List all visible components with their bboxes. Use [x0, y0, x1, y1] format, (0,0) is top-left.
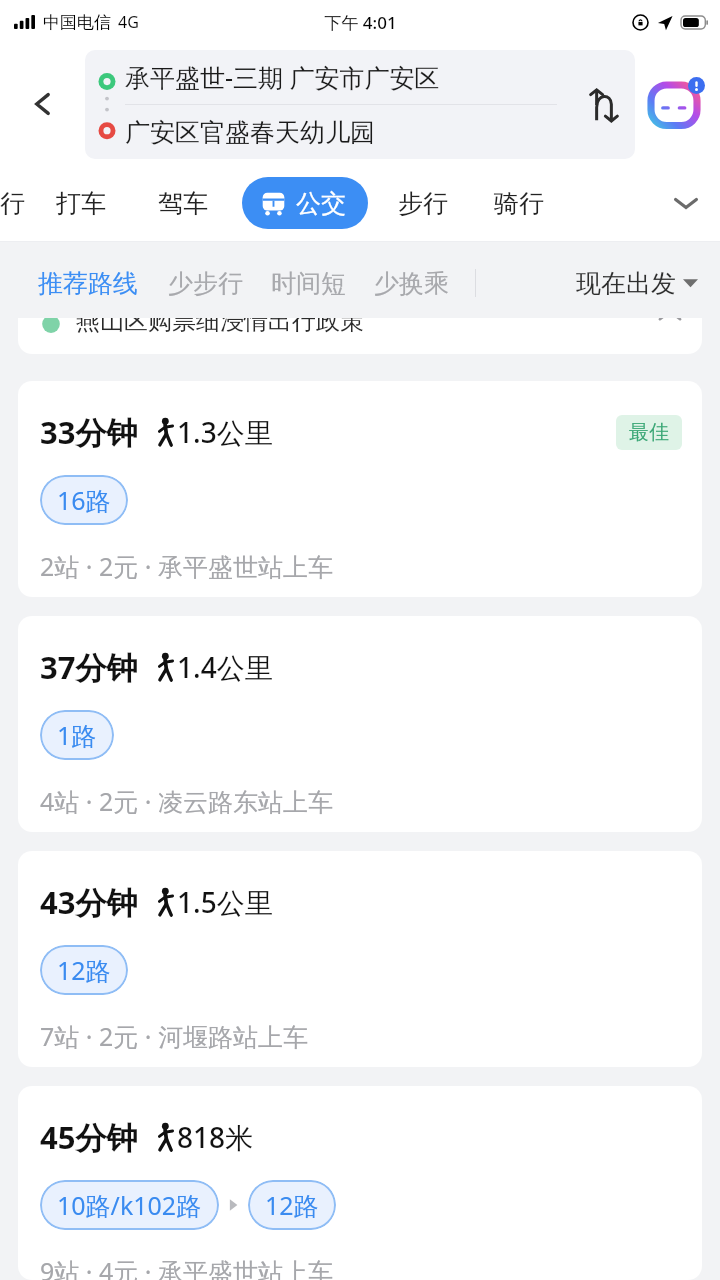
staticText: 12路	[57, 953, 111, 987]
staticText: 45分钟	[40, 1116, 138, 1158]
button[interactable]: 43分钟	[18, 851, 702, 1067]
staticText: 骑行	[494, 188, 544, 219]
staticText: 37分钟	[40, 646, 138, 688]
button[interactable]: 10路/k102路	[40, 1180, 219, 1230]
button[interactable]: 公交	[242, 177, 368, 229]
staticText: 16路	[57, 483, 111, 517]
button[interactable]: 承平盛世-三期 广安市广安区	[85, 50, 635, 159]
button[interactable]: Swap origin and destination	[573, 50, 635, 159]
staticText: 1.3公里	[177, 413, 273, 451]
button[interactable]: 燕山区购票细浸情出行政策	[18, 318, 702, 354]
staticText: 少步行	[168, 268, 243, 299]
staticText: 9站 · 4元 · 承平盛世站上车	[40, 1254, 334, 1280]
staticText: 33分钟	[40, 411, 138, 453]
staticText: 公交	[296, 188, 346, 219]
staticText: 下午 4:01	[324, 11, 397, 34]
staticText: 43分钟	[40, 881, 138, 923]
button[interactable]: 12路	[248, 1180, 336, 1230]
staticText: 12路	[265, 1188, 319, 1222]
button[interactable]: 16路	[40, 475, 128, 525]
staticText: 最佳	[629, 420, 669, 445]
staticText: 驾车	[158, 188, 208, 219]
staticText: 广安区官盛春天幼儿园	[125, 117, 375, 148]
button[interactable]: 45分钟	[18, 1086, 702, 1280]
staticText: 7站 · 2元 · 河堰路站上车	[40, 1019, 309, 1053]
button[interactable]: 步行	[396, 164, 450, 242]
button[interactable]: 推荐路线	[38, 252, 138, 314]
button[interactable]: 少步行	[168, 252, 243, 314]
button[interactable]: 驾车	[156, 164, 210, 242]
button[interactable]: 12路	[40, 945, 128, 995]
staticText: 推荐路线	[38, 268, 138, 299]
staticText: 中国电信	[43, 12, 111, 33]
staticText: 1.5公里	[177, 883, 273, 921]
button[interactable]: Assistant	[635, 44, 720, 164]
staticText: 承平盛世-三期 广安市广安区	[125, 60, 440, 94]
staticText: 时间短	[271, 268, 346, 299]
staticText: 2站 · 2元 · 承平盛世站上车	[40, 549, 334, 583]
button[interactable]: 时间短	[271, 252, 346, 314]
staticText: 燕山区购票细浸情出行政策	[76, 318, 364, 336]
staticText: 步行	[398, 188, 448, 219]
staticText: 818米	[177, 1118, 254, 1156]
button[interactable]: More modes	[652, 164, 720, 242]
button[interactable]: 骑行	[492, 164, 546, 242]
button[interactable]: 现在出发	[576, 252, 698, 314]
button[interactable]: 少换乘	[374, 252, 449, 314]
staticText: 4站 · 2元 · 凌云路东站上车	[40, 784, 334, 818]
button[interactable]: Back	[0, 44, 85, 164]
staticText: 打车	[56, 188, 106, 219]
staticText: 10路/k102路	[57, 1188, 202, 1222]
staticText: 4G	[118, 11, 139, 33]
button[interactable]: 33分钟	[18, 381, 702, 597]
staticText: 现在出发	[576, 268, 676, 299]
staticText: 少换乘	[374, 268, 449, 299]
button[interactable]: 37分钟	[18, 616, 702, 832]
staticText: 1.4公里	[177, 648, 273, 686]
staticText: 1路	[57, 718, 97, 752]
button[interactable]: 行	[0, 164, 22, 242]
button[interactable]: 打车	[54, 164, 108, 242]
staticText: 行	[0, 188, 22, 219]
button[interactable]: 1路	[40, 710, 114, 760]
